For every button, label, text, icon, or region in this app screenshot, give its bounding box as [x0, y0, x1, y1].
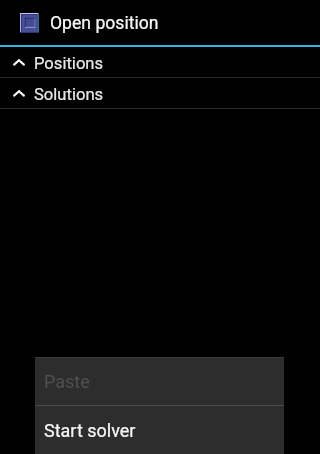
- button[interactable]: Collapse Solutions: [0, 78, 320, 108]
- staticText: Positions: [34, 54, 104, 73]
- staticText: Solutions: [34, 85, 104, 104]
- button[interactable]: Open position: [0, 0, 173, 45]
- staticText: Start solver: [44, 420, 136, 441]
- staticText: Open position: [50, 13, 159, 34]
- button[interactable]: Paste: [35, 358, 284, 405]
- staticText: Paste: [44, 371, 90, 392]
- other: Collapse Positions: [13, 59, 25, 66]
- button[interactable]: Start solver: [35, 406, 284, 454]
- button[interactable]: Collapse Positions: [0, 47, 320, 77]
- other: Collapse Solutions: [13, 90, 25, 97]
